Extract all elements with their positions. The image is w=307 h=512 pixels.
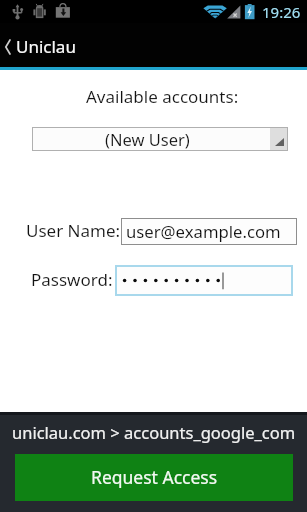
button[interactable]: Request Access xyxy=(15,454,293,501)
staticText: 19:26 xyxy=(262,2,301,22)
staticText: user@example.com xyxy=(126,220,281,243)
button[interactable] xyxy=(115,265,293,296)
staticText: (New User) xyxy=(105,128,190,150)
staticText: Available accounts: xyxy=(86,85,239,108)
button[interactable]: (New User) xyxy=(32,127,288,151)
staticText: Request Access xyxy=(91,465,218,489)
button[interactable]: user@example.com xyxy=(121,218,297,245)
button[interactable]: Up, Uniclau xyxy=(0,23,307,67)
staticText: Password: xyxy=(31,268,113,291)
staticText: Uniclau xyxy=(16,35,76,58)
staticText: uniclau.com > accounts_google_com xyxy=(12,421,296,443)
staticText: User Name: xyxy=(26,219,121,242)
